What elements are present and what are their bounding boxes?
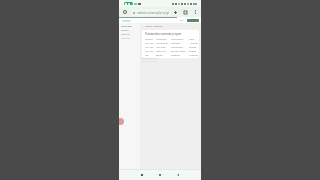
staticText: Reports — [121, 32, 130, 35]
staticText: Zenith — [156, 54, 170, 57]
button[interactable]: Chat — [119, 118, 124, 125]
staticText: Settings › — [121, 36, 133, 39]
staticText: Help — [179, 19, 185, 22]
staticText: Orders — [121, 28, 129, 31]
staticText: Total — [189, 38, 199, 41]
staticText: acme — [122, 19, 131, 23]
staticText: INV-102 — [145, 50, 155, 53]
staticText: Support — [171, 54, 188, 57]
staticText: Home / Reports — [145, 24, 163, 27]
button[interactable]: Recents — [139, 172, 144, 177]
button[interactable]: Reload — [122, 9, 128, 15]
staticText: Lyn Trad. — [156, 46, 170, 49]
staticText: Orbit Ltd — [156, 50, 170, 53]
staticText: Overview — [121, 24, 132, 27]
staticText: Service credit — [171, 50, 188, 53]
staticText: INV-103 — [145, 46, 155, 49]
button[interactable]: Home — [157, 172, 162, 177]
staticText: 840.00 — [189, 46, 199, 49]
button[interactable]: admin.example.org/reports — [130, 9, 171, 16]
staticText: INV — [145, 54, 155, 57]
staticText: Monthly retainer — [171, 42, 188, 45]
staticText: Showing 4 of 4 — [141, 57, 157, 60]
button[interactable]: New tab — [172, 9, 178, 15]
button[interactable]: Tabs — [182, 9, 188, 15]
staticText: 1 240.00 — [189, 42, 199, 45]
staticText: Acme Hold. — [156, 42, 170, 45]
staticText: admin.example.org/reports — [137, 10, 171, 15]
staticText: Updated today — [141, 60, 158, 63]
button[interactable]: More options — [192, 9, 198, 15]
staticText: Invoice — [145, 38, 155, 41]
button[interactable]: Back — [175, 172, 180, 177]
staticText: 2 980.00 — [189, 54, 199, 57]
button[interactable] — [187, 19, 199, 22]
staticText: INV-104 — [145, 42, 155, 45]
staticText: Description — [171, 38, 188, 41]
staticText: Customer — [156, 38, 170, 41]
staticText: Consulting hours — [171, 46, 188, 49]
staticText: Transaction summary report — [145, 32, 182, 36]
staticText: 420.00 — [189, 50, 199, 53]
